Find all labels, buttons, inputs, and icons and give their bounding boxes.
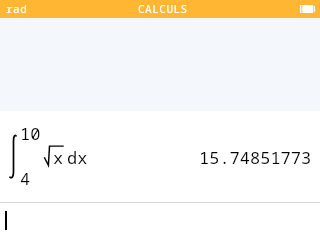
staticText: 15.74851773: [199, 146, 312, 169]
button[interactable]: rad: [0, 0, 33, 18]
staticText: CALCULS: [138, 1, 188, 16]
staticText: 4: [20, 167, 31, 190]
button[interactable]: [0, 203, 320, 240]
staticText: dx: [67, 146, 88, 169]
staticText: 10: [20, 122, 41, 145]
staticText: rad: [6, 1, 28, 16]
staticText: x: [53, 146, 64, 169]
other: Battery full: [300, 5, 315, 13]
button[interactable]: 10: [0, 111, 320, 202]
